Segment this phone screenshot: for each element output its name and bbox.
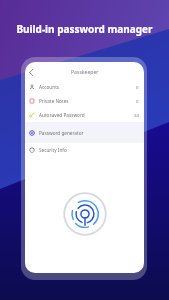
other: Back [25,62,37,82]
staticText: Autosaved Password [39,112,85,118]
staticText: 0 [136,98,139,104]
button[interactable]: Security Info [25,143,144,157]
staticText: Passkeeper [71,69,99,76]
staticText: 34 [134,112,139,118]
staticText: Build-in password manager [16,22,153,36]
button[interactable]: Private Notes [25,94,144,108]
staticText: 0 [136,84,139,90]
button[interactable]: Autosaved Password [25,108,144,122]
button[interactable]: Accounts [25,80,144,94]
staticText: Security Info [39,147,67,153]
staticText: Accounts [39,84,60,90]
button[interactable]: Back [25,62,144,82]
staticText: Private Notes [39,98,69,104]
button[interactable]: Password generator [25,122,144,143]
staticText: Password generator [39,130,84,136]
